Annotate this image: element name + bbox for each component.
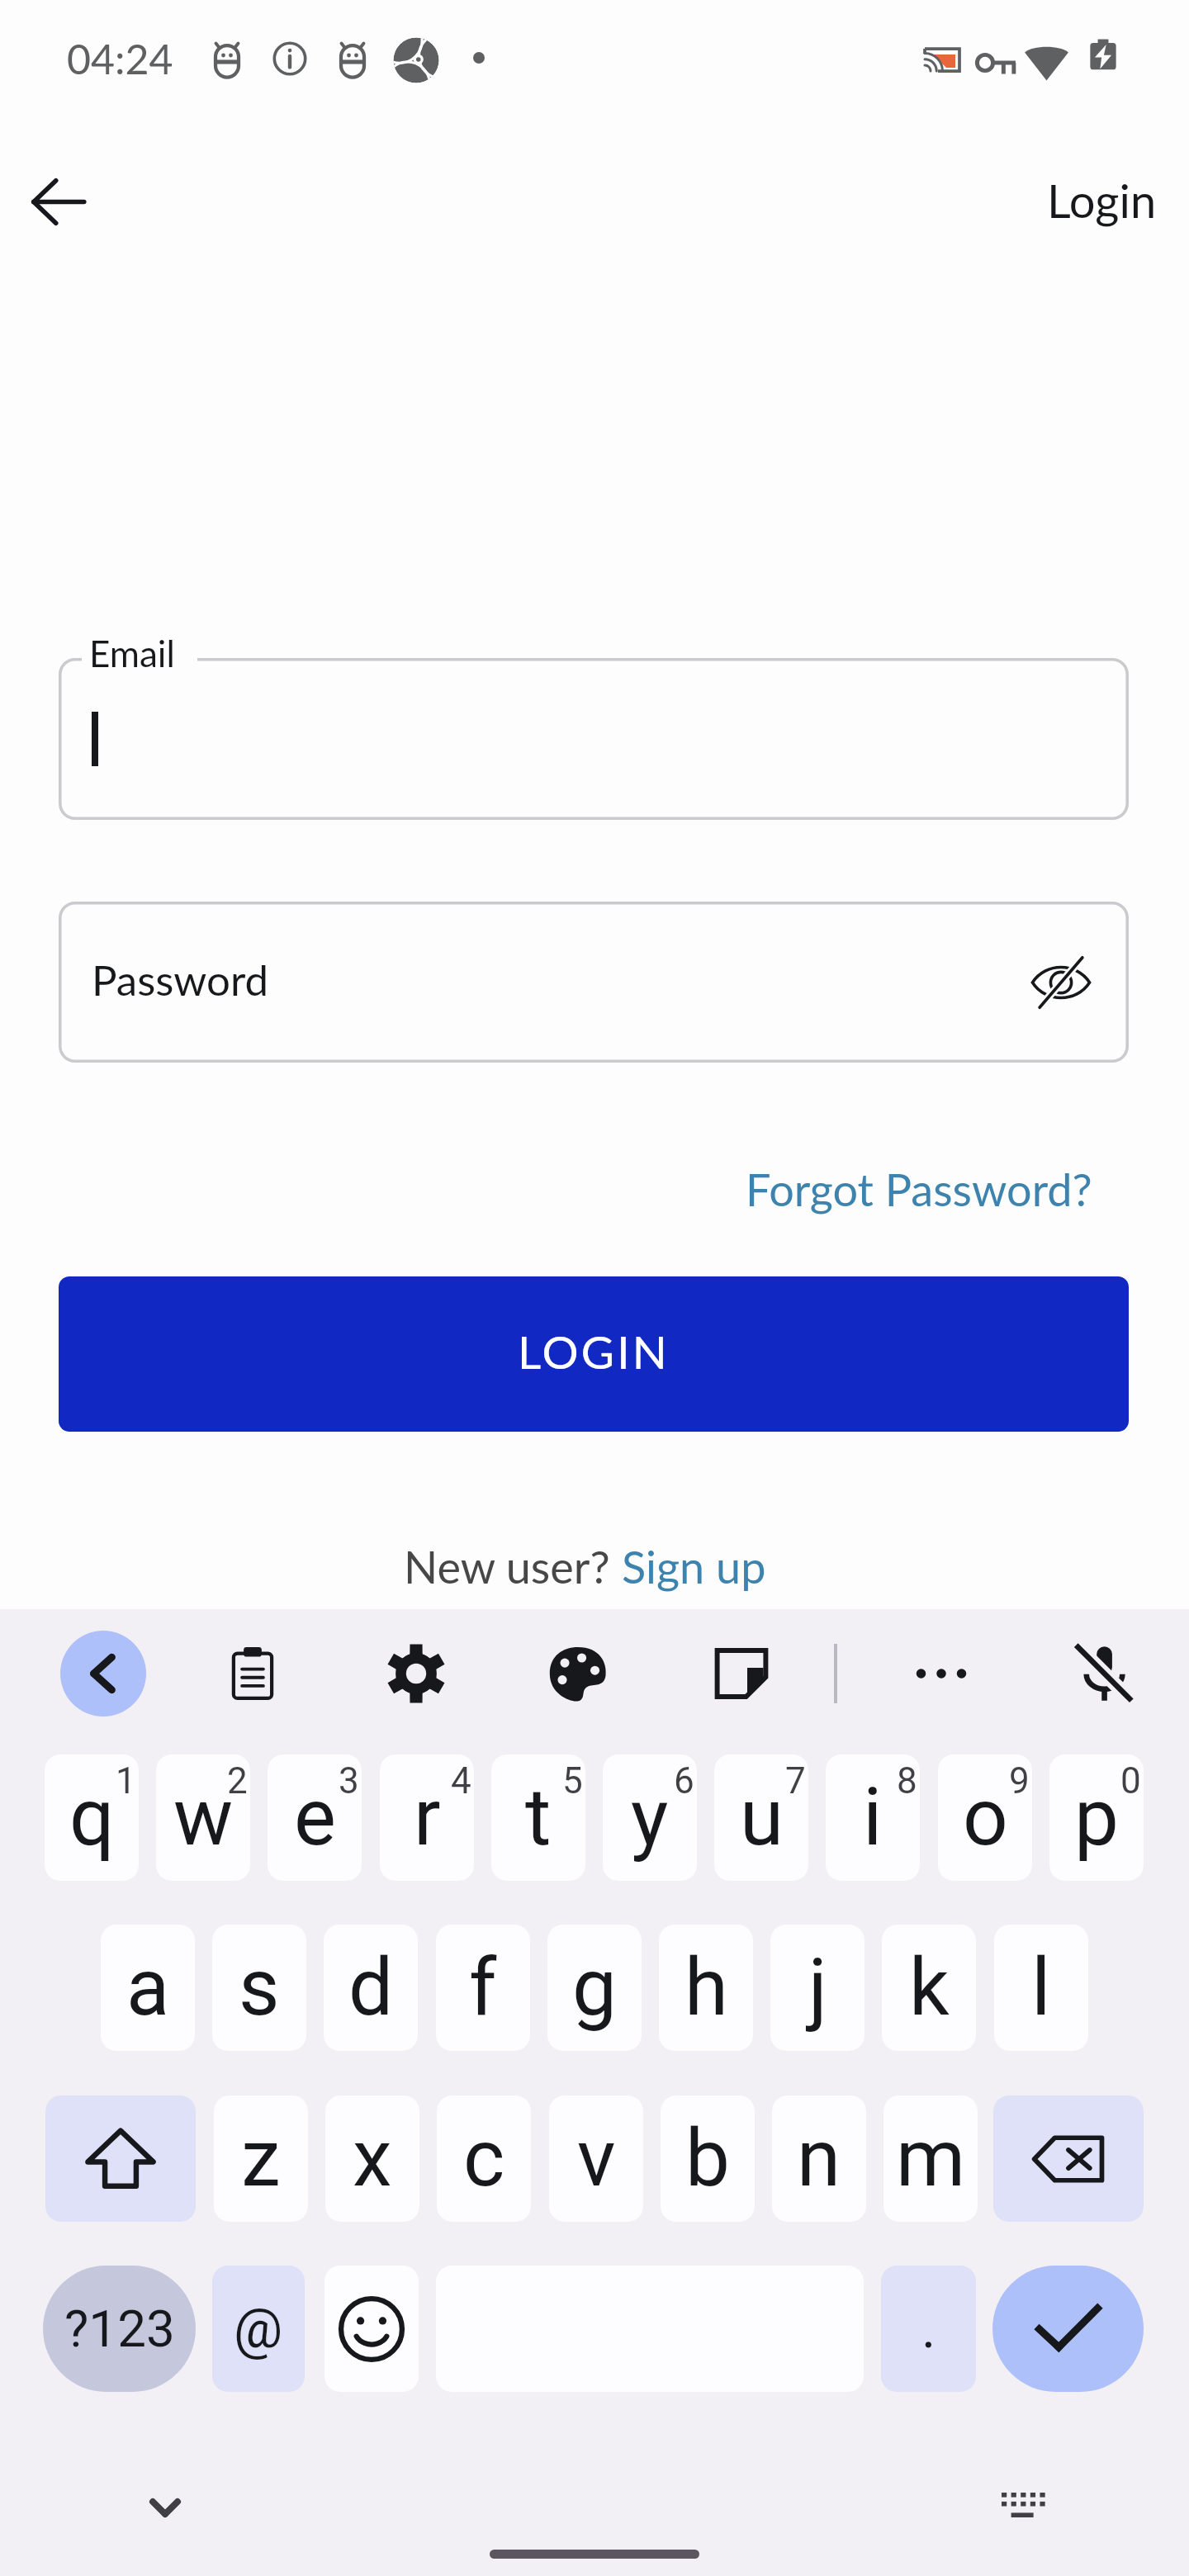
staticText: j (808, 1941, 827, 2034)
button[interactable]: s (212, 1925, 306, 2051)
button[interactable]: ?123 (43, 2266, 196, 2392)
staticText: a (126, 1941, 170, 2034)
staticText: f (469, 1941, 497, 2034)
staticText: h (685, 1941, 728, 2034)
button[interactable]: Sign up (622, 1540, 766, 1593)
button[interactable]: k (882, 1925, 976, 2051)
button[interactable]: p (1049, 1754, 1144, 1881)
button[interactable]: f (436, 1925, 530, 2051)
button[interactable]: More options (902, 1634, 981, 1713)
staticText: z (241, 2112, 281, 2205)
staticText: q (69, 1771, 115, 1864)
staticText: 04:24 (67, 34, 173, 83)
staticText: l (1031, 1941, 1051, 2034)
staticText: 1 (116, 1759, 136, 1802)
button[interactable]: j (770, 1925, 865, 2051)
staticText: New user? (404, 1540, 610, 1593)
staticText: LOGIN (518, 1324, 670, 1379)
staticText: 7 (785, 1759, 806, 1802)
button[interactable]: r (380, 1754, 474, 1881)
button[interactable]: Backspace (993, 2095, 1144, 2222)
button[interactable]: i (826, 1754, 920, 1881)
staticText: w (173, 1771, 234, 1864)
staticText: b (685, 2112, 730, 2205)
staticText: u (740, 1771, 784, 1864)
button[interactable]: Enter (992, 2266, 1144, 2392)
staticText: Login (1047, 173, 1157, 228)
button[interactable]: . (881, 2266, 976, 2392)
button[interactable]: Previous (60, 1631, 146, 1717)
staticText: 2 (227, 1759, 248, 1802)
staticText: k (909, 1941, 950, 2034)
button[interactable]: l (994, 1925, 1088, 2051)
staticText: 6 (674, 1759, 694, 1802)
staticText: e (294, 1771, 336, 1864)
button[interactable]: v (549, 2095, 643, 2222)
button[interactable]: t (491, 1754, 585, 1881)
button[interactable]: Shift (45, 2095, 196, 2222)
staticText: v (577, 2112, 616, 2205)
staticText: p (1074, 1771, 1119, 1864)
staticText: @ (234, 2297, 283, 2361)
staticText: t (525, 1771, 552, 1864)
button[interactable]: g (547, 1925, 642, 2051)
staticText: 0 (1120, 1759, 1141, 1802)
button[interactable]: w (156, 1754, 250, 1881)
staticText: 9 (1009, 1759, 1030, 1802)
staticText: m (896, 2112, 966, 2205)
button[interactable]: Switch keyboard (983, 2465, 1065, 2547)
button[interactable]: Forgot Password? (746, 1163, 1092, 1216)
button[interactable]: x (325, 2095, 419, 2222)
staticText: c (463, 2112, 505, 2205)
button[interactable]: Back (7, 144, 110, 259)
button[interactable]: Emoji (324, 2266, 419, 2392)
staticText: 5 (562, 1759, 583, 1802)
button[interactable]: h (659, 1925, 753, 2051)
staticText: x (353, 2112, 392, 2205)
staticText: ?123 (64, 2299, 175, 2359)
button[interactable]: c (437, 2095, 531, 2222)
staticText: Email (89, 632, 175, 675)
staticText: n (797, 2112, 841, 2205)
staticText: g (572, 1941, 617, 2034)
button[interactable]: z (214, 2095, 308, 2222)
button[interactable]: y (603, 1754, 697, 1881)
button[interactable]: Clipboard (213, 1634, 292, 1713)
staticText: . (921, 2297, 936, 2361)
staticText: Password (92, 954, 269, 1005)
button[interactable]: o (938, 1754, 1032, 1881)
button[interactable]: u (714, 1754, 808, 1881)
button[interactable]: Settings (377, 1634, 456, 1713)
staticText: Sign up (622, 1540, 766, 1593)
button[interactable]: Theme (538, 1634, 618, 1713)
staticText: o (963, 1771, 1008, 1864)
staticText: 3 (339, 1759, 359, 1802)
button[interactable]: LOGIN (59, 1276, 1129, 1432)
button[interactable]: m (883, 2095, 978, 2222)
button[interactable]: q (45, 1754, 139, 1881)
button[interactable]: Stickers (702, 1634, 781, 1713)
staticText: 8 (897, 1759, 917, 1802)
button[interactable]: a (101, 1925, 195, 2051)
button[interactable]: @ (212, 2266, 305, 2392)
button[interactable]: Show password (1011, 933, 1111, 1032)
staticText: s (239, 1941, 280, 2034)
button[interactable]: d (324, 1925, 418, 2051)
button[interactable]: n (772, 2095, 866, 2222)
staticText: r (414, 1771, 441, 1864)
button[interactable]: Mute microphone (1063, 1634, 1143, 1713)
staticText: i (863, 1771, 883, 1864)
staticText: 4 (451, 1759, 471, 1802)
button[interactable]: e (268, 1754, 362, 1881)
staticText: Forgot Password? (746, 1163, 1092, 1216)
button[interactable]: b (661, 2095, 755, 2222)
staticText: d (348, 1941, 394, 2034)
button[interactable]: Hide keyboard (124, 2466, 206, 2549)
staticText: y (631, 1771, 669, 1864)
